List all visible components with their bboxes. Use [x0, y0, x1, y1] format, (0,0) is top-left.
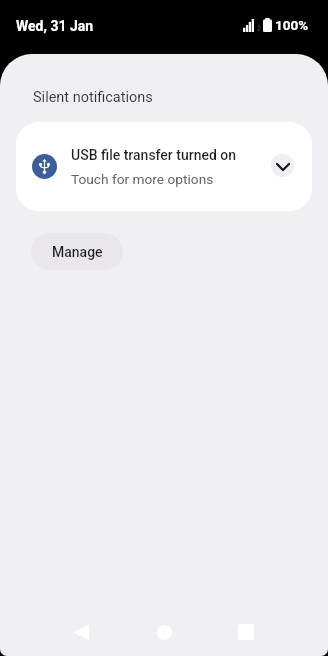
button[interactable]: Expand notification [271, 154, 294, 177]
staticText: Silent notifications [33, 89, 153, 106]
button[interactable]: USB file transfer turned on [16, 122, 312, 211]
staticText: Touch for more options [71, 171, 214, 187]
button[interactable]: Home [142, 610, 186, 654]
button[interactable]: Manage [31, 233, 123, 270]
staticText: Wed, 31 Jan [16, 18, 94, 34]
staticText: Manage [52, 244, 103, 260]
staticText: 100% [275, 17, 309, 33]
staticText: USB file transfer turned on [71, 147, 237, 163]
button[interactable]: Recent apps [224, 610, 268, 654]
button[interactable]: Back [59, 610, 103, 654]
